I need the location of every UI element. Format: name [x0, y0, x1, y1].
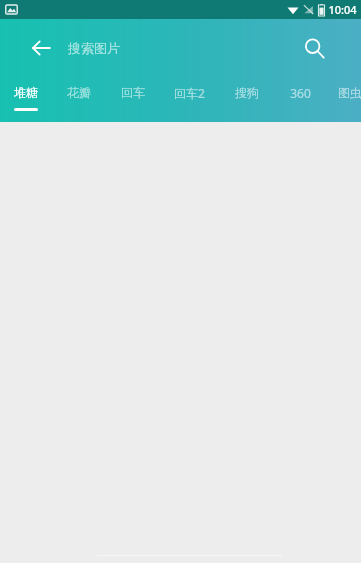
button[interactable]: 图虫 — [324, 77, 361, 122]
staticText: 回车 — [121, 85, 145, 100]
staticText: 堆糖 — [14, 85, 38, 100]
staticText: 搜索图片 — [68, 40, 120, 56]
staticText: 花瓣 — [67, 85, 91, 100]
button[interactable]: 搜狗 — [221, 77, 273, 122]
staticText: 图虫 — [338, 85, 361, 100]
button[interactable]: 堆糖 — [0, 77, 52, 122]
button[interactable]: 360 — [276, 77, 324, 122]
button[interactable]: 搜索图片 — [68, 26, 286, 70]
staticText: 10:04 — [328, 2, 357, 17]
staticText: 360 — [290, 85, 311, 101]
button[interactable]: 回车 — [107, 77, 159, 122]
button[interactable]: 回车2 — [160, 77, 218, 122]
button[interactable]: Search — [294, 28, 334, 68]
button[interactable]: Back — [18, 25, 64, 71]
button[interactable]: 花瓣 — [53, 77, 105, 122]
staticText: 搜狗 — [235, 85, 259, 100]
staticText: 回车2 — [174, 85, 205, 101]
